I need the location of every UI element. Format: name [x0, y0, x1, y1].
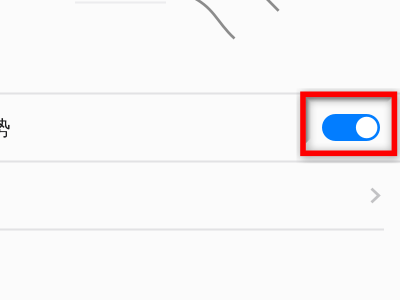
button[interactable]: 势 — [0, 93, 400, 161]
staticText: 势 — [0, 116, 10, 140]
button[interactable] — [0, 161, 400, 229]
